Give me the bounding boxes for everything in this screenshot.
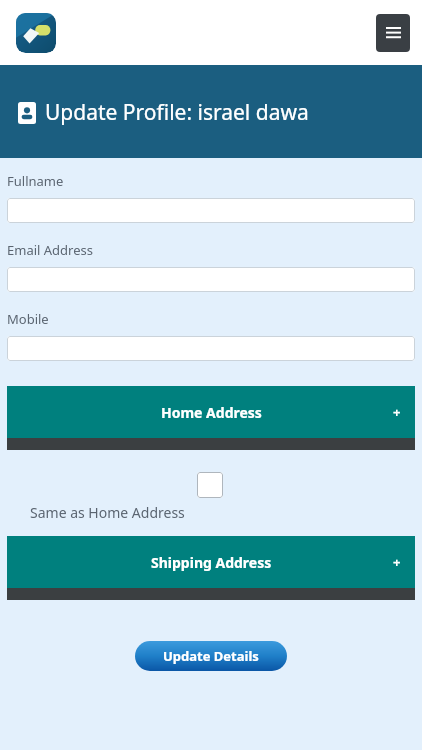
staticText: Shipping Address — [151, 553, 272, 572]
staticText: Home Address — [161, 403, 262, 422]
staticText: + — [393, 553, 401, 571]
staticText: + — [393, 403, 401, 421]
button[interactable]: Fullname — [7, 198, 415, 223]
button[interactable]: Mobile — [7, 336, 415, 361]
button[interactable]: Email Address — [7, 267, 415, 292]
button[interactable]: Open menu — [376, 14, 410, 52]
button[interactable]: Home Address — [7, 386, 415, 438]
button[interactable]: Same as Home Address checkbox — [197, 472, 223, 498]
staticText: Email Address — [7, 241, 93, 259]
button[interactable]: Update Details — [135, 641, 287, 671]
button[interactable]: App logo home — [16, 13, 56, 53]
staticText: Same as Home Address — [30, 503, 185, 522]
button[interactable]: Shipping Address — [7, 536, 415, 588]
staticText: Fullname — [7, 172, 64, 190]
staticText: Update Details — [163, 647, 259, 665]
staticText: Mobile — [7, 310, 49, 328]
staticText: Update Profile: israel dawa — [45, 98, 309, 127]
